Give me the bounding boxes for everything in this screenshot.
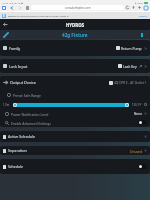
staticText: Power Notification Level [11, 112, 49, 116]
staticText: Return Pump [121, 46, 142, 50]
button[interactable]: Back [10, 6, 14, 10]
staticText: hydros [139, 14, 148, 17]
staticText: ▾ 100% [135, 1, 143, 4]
staticText: consularhydros.com [65, 6, 91, 10]
staticText: HYDROS [66, 22, 85, 28]
staticText: None [134, 112, 142, 116]
staticText: Lock Input [9, 64, 28, 69]
button[interactable]: Schedule [0, 159, 150, 174]
staticText: Preset Safe Range [13, 93, 41, 97]
staticText: 10:42 Tue Jul 18 ▪ [2, 1, 23, 4]
staticText: Enable Advanced Settings [11, 121, 51, 125]
staticText: S [3, 14, 5, 18]
button[interactable]: Toggle [138, 164, 147, 169]
button[interactable]: Reload [126, 6, 129, 9]
button[interactable]: Share [132, 6, 135, 9]
button[interactable]: Back [3, 22, 8, 27]
staticText: Family [9, 46, 21, 51]
button[interactable]: Lock Input [0, 59, 150, 73]
button[interactable]: consularhydros.com [31, 5, 124, 10]
button[interactable]: Enable Advanced Settings [0, 118, 150, 127]
staticText: 1.0m [3, 103, 10, 107]
staticText: Active Schedule [8, 134, 36, 139]
button[interactable]: Toggle [138, 120, 147, 125]
button[interactable]: Separation [0, 146, 150, 155]
staticText: Leak Key [123, 64, 137, 68]
staticText: Backup to Save the world Crack Best Tick… [8, 14, 69, 17]
staticText: Unused [130, 149, 142, 153]
staticText: Schedule [8, 164, 23, 169]
button[interactable]: S [0, 12, 150, 19]
button[interactable]: Power Notification Level [0, 109, 150, 118]
button[interactable]: Active Schedule [0, 131, 150, 142]
staticText: 42g Fixture [62, 32, 88, 38]
button[interactable]: Edit [3, 32, 9, 38]
staticText: Output Device [10, 80, 37, 85]
button[interactable]: Forward [18, 6, 22, 10]
button[interactable]: Output Device [0, 76, 150, 89]
button[interactable]: Tabs [144, 6, 148, 10]
button[interactable]: New tab [138, 6, 141, 9]
staticText: 130.3°F [132, 103, 142, 107]
staticText: 40J DFR 5 - AC Outlet 1 [114, 81, 147, 85]
button[interactable]: Tab grid [2, 6, 6, 10]
button[interactable]: Family [0, 40, 150, 56]
staticText: Separation [8, 148, 27, 153]
